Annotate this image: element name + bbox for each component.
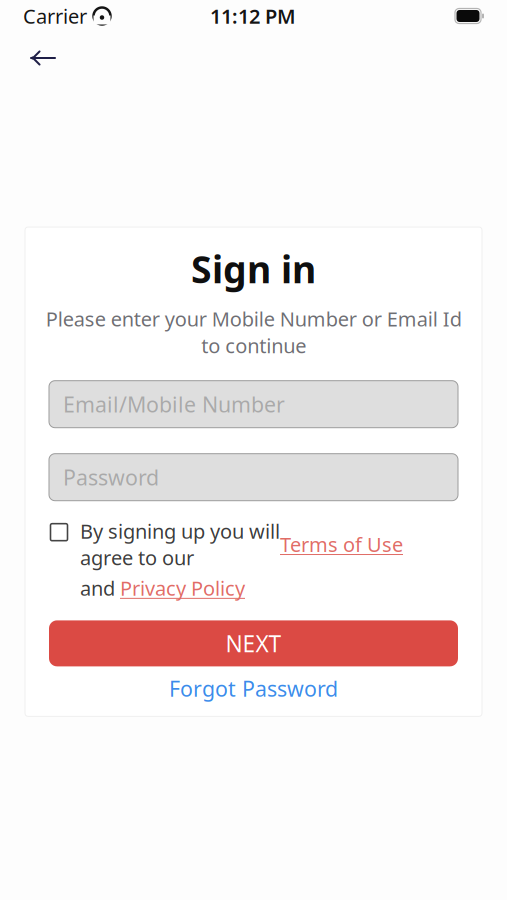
- staticText: Terms of Use: [280, 531, 403, 558]
- staticText: Password: [63, 463, 159, 491]
- staticText: Sign in: [191, 244, 316, 294]
- button[interactable]: Forgot Password: [25, 674, 482, 702]
- staticText: Privacy Policy: [120, 575, 245, 601]
- staticText: Email/Mobile Number: [63, 390, 285, 418]
- staticText: By signing up you will agree to our: [80, 518, 280, 571]
- button[interactable]: Terms of Use: [280, 531, 403, 558]
- staticText: and: [80, 575, 120, 601]
- staticText: 11:12 PM: [210, 3, 296, 29]
- staticText: Please enter your Mobile Number or Email…: [45, 306, 461, 359]
- staticText: Forgot Password: [169, 674, 338, 702]
- staticText: Carrier: [23, 3, 87, 29]
- button[interactable]: Back: [20, 35, 66, 81]
- button[interactable]: Agree to terms: [49, 518, 69, 544]
- button[interactable]: Privacy Policy: [120, 575, 245, 601]
- staticText: NEXT: [225, 628, 281, 658]
- button[interactable]: NEXT: [49, 620, 458, 666]
